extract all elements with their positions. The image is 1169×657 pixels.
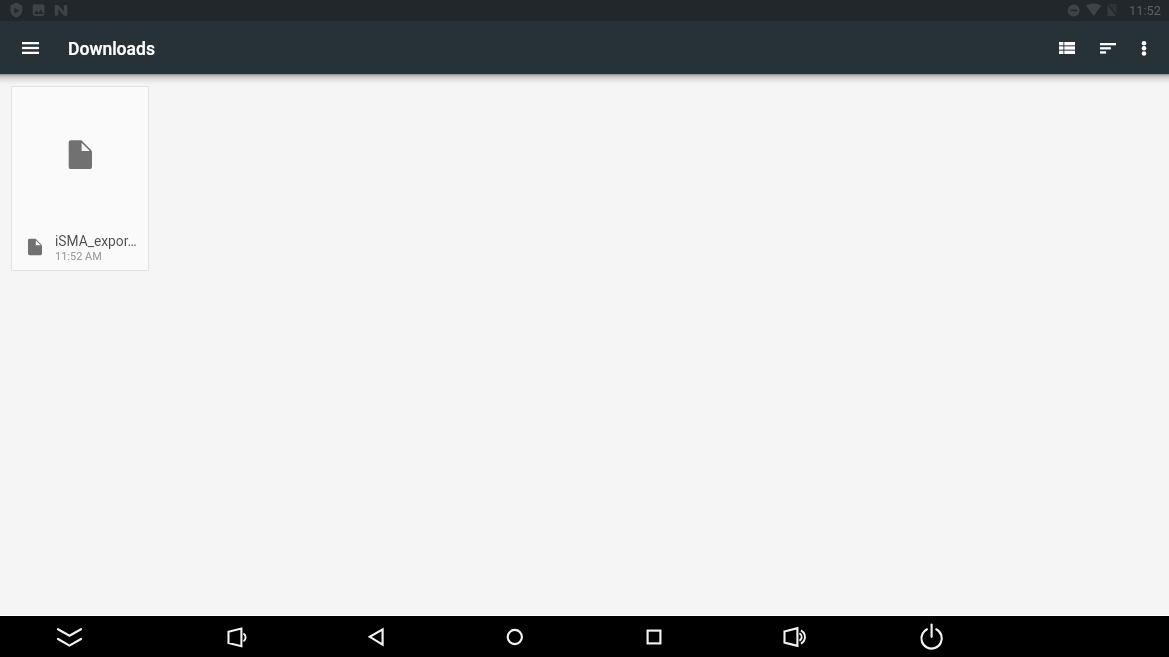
button[interactable]: Switch to list view xyxy=(1042,21,1091,74)
button[interactable]: Home xyxy=(482,616,548,657)
button[interactable]: Power xyxy=(898,616,964,657)
button[interactable]: Volume up xyxy=(761,616,827,657)
staticText: 11:52 AM xyxy=(55,250,102,263)
button[interactable]: Recent apps xyxy=(621,616,687,657)
button[interactable]: Open navigation drawer xyxy=(6,21,55,74)
button[interactable]: iSMA_expor… xyxy=(11,86,149,271)
staticText: Downloads xyxy=(68,39,155,60)
staticText: 11:52 xyxy=(1129,3,1161,18)
button[interactable]: Sort xyxy=(1083,21,1132,74)
button[interactable]: Hide navigation bar xyxy=(37,616,103,657)
staticText: iSMA_expor… xyxy=(55,233,137,249)
button[interactable]: Back xyxy=(343,616,409,657)
button[interactable]: Volume down xyxy=(203,616,269,657)
button[interactable]: More options xyxy=(1119,21,1168,74)
